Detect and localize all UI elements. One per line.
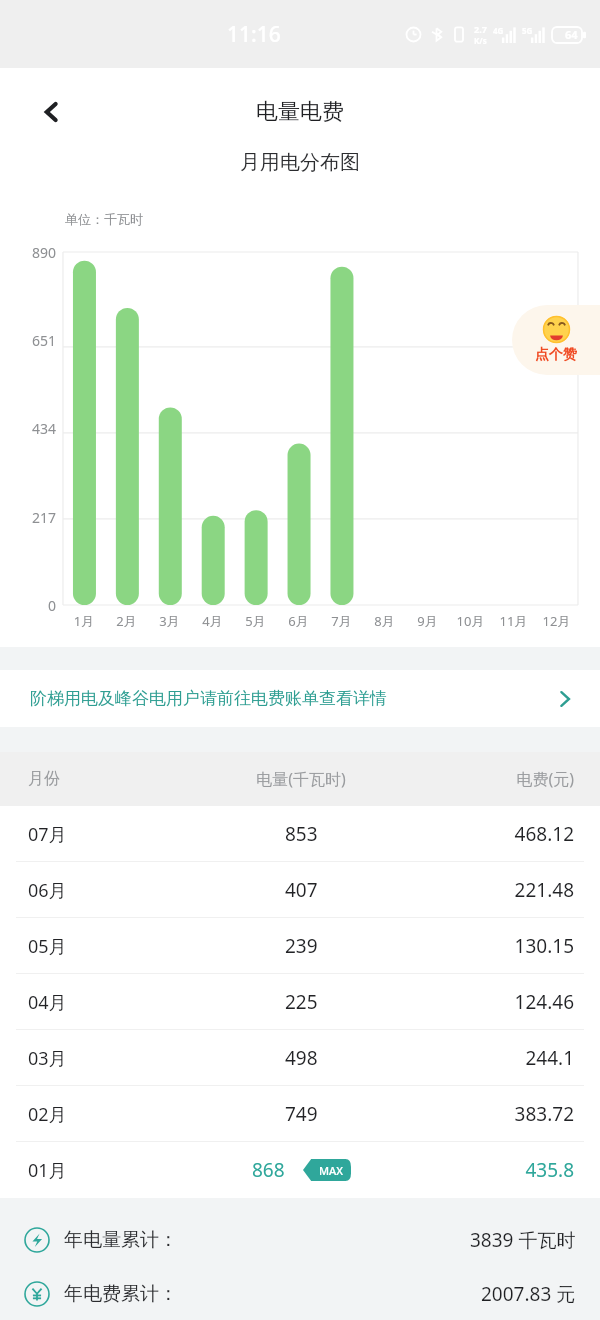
staticText: 853	[285, 821, 318, 847]
staticText: 383.72	[406, 1101, 574, 1127]
staticText: 电量(千瓦时)	[196, 768, 406, 790]
staticText: 06月	[28, 878, 196, 903]
staticText: 年电量累计：	[64, 1228, 178, 1252]
button[interactable]: 阶梯用电及峰谷电用户请前往电费账单查看详情	[0, 670, 600, 727]
staticText: 月份	[28, 769, 196, 789]
staticText: 10月	[449, 612, 492, 630]
staticText: MAX	[319, 1163, 344, 1178]
button[interactable]: Back	[30, 90, 74, 134]
staticText: 434	[4, 419, 56, 438]
staticText: 03月	[28, 1046, 196, 1071]
staticText: 225	[285, 989, 318, 1015]
staticText: 05月	[28, 934, 196, 959]
staticText: 阶梯用电及峰谷电用户请前往电费账单查看详情	[30, 688, 556, 709]
staticText: 498	[285, 1045, 318, 1071]
staticText: 11月	[492, 612, 535, 630]
staticText: 6月	[277, 612, 320, 630]
staticText: 468.12	[406, 821, 574, 847]
staticText: 3月	[148, 612, 191, 630]
button[interactable]: 06月	[0, 862, 600, 918]
staticText: 890	[4, 243, 56, 262]
staticText: 130.15	[406, 933, 574, 959]
staticText: 电费(元)	[406, 768, 574, 790]
staticText: 4G	[493, 25, 504, 36]
staticText: 221.48	[406, 877, 574, 903]
staticText: 8月	[363, 612, 406, 630]
button[interactable]: 02月	[0, 1086, 600, 1142]
staticText: 04月	[28, 990, 196, 1015]
staticText: 239	[285, 933, 318, 959]
staticText: 11:16	[227, 20, 281, 49]
staticText: 868	[252, 1157, 285, 1183]
button[interactable]: 01月	[0, 1142, 600, 1198]
staticText: 月用电分布图	[240, 150, 360, 175]
staticText: 电量电费	[256, 98, 344, 126]
button[interactable]: 点个赞	[512, 305, 600, 375]
button[interactable]: 04月	[0, 974, 600, 1030]
staticText: 3839 千瓦时	[470, 1227, 576, 1253]
staticText: 点个赞	[535, 346, 577, 364]
staticText: 7月	[320, 612, 363, 630]
staticText: 2月	[105, 612, 148, 630]
staticText: 01月	[28, 1158, 196, 1183]
staticText: K/s	[474, 35, 487, 46]
staticText: 435.8	[406, 1157, 574, 1183]
staticText: 0	[4, 596, 56, 615]
staticText: 单位：千瓦时	[65, 211, 143, 227]
staticText: 749	[285, 1101, 318, 1127]
staticText: 9月	[406, 612, 449, 630]
button[interactable]: 03月	[0, 1030, 600, 1086]
staticText: 5G	[522, 25, 533, 36]
staticText: 02月	[28, 1102, 196, 1127]
staticText: 年电费累计：	[64, 1282, 178, 1306]
button[interactable]: 05月	[0, 918, 600, 974]
staticText: 1月	[63, 612, 105, 630]
staticText: 12月	[535, 612, 578, 630]
staticText: 4月	[191, 612, 234, 630]
staticText: 124.46	[406, 989, 574, 1015]
button[interactable]: 07月	[0, 806, 600, 862]
staticText: 217	[4, 508, 56, 527]
staticText: 5月	[234, 612, 277, 630]
staticText: 07月	[28, 822, 196, 847]
staticText: 407	[285, 877, 318, 903]
staticText: 64	[565, 27, 578, 42]
staticText: 2.7	[474, 23, 487, 35]
staticText: 244.1	[406, 1045, 574, 1071]
staticText: 2007.83 元	[481, 1281, 576, 1307]
staticText: 651	[4, 331, 56, 350]
